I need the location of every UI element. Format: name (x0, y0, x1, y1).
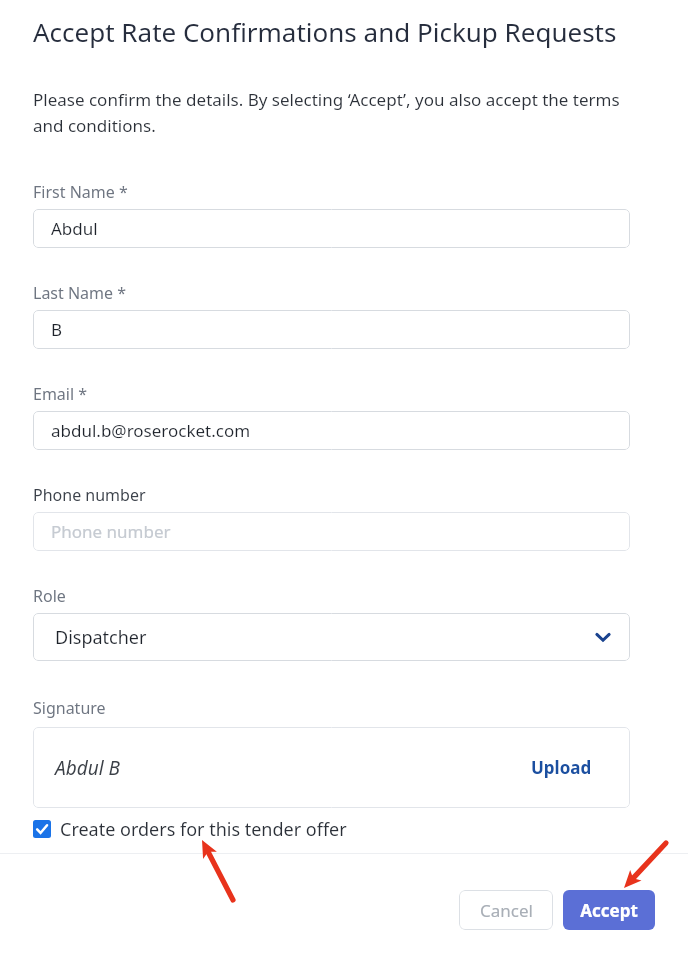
staticText: Signature (33, 697, 106, 719)
staticText: Dispatcher (55, 625, 594, 650)
staticText: Last Name * (33, 282, 127, 304)
staticText: First Name * (33, 181, 128, 203)
staticText: Email * (33, 383, 88, 405)
staticText: Create orders for this tender offer (60, 817, 347, 842)
button[interactable]: abdul.b@roserocket.com (33, 411, 630, 450)
staticText: Please confirm the details. By selecting… (33, 88, 638, 137)
button[interactable]: Accept (563, 890, 655, 930)
button[interactable]: Create orders for this tender offer (31, 814, 349, 844)
staticText: Cancel (480, 899, 533, 922)
button[interactable]: Phone number (33, 512, 630, 551)
staticText: Abdul B (55, 755, 531, 781)
staticText: abdul.b@roserocket.com (51, 419, 251, 442)
button[interactable]: B (33, 310, 630, 349)
staticText: Phone number (33, 484, 146, 506)
staticText: Phone number (51, 520, 171, 543)
button[interactable]: Abdul (33, 209, 630, 248)
button[interactable]: Cancel (459, 890, 553, 930)
button[interactable]: Upload (531, 756, 592, 779)
staticText: B (51, 318, 63, 341)
staticText: Role (33, 585, 66, 607)
button[interactable]: Dispatcher (33, 613, 630, 661)
staticText: Accept (580, 899, 638, 922)
staticText: Upload (531, 756, 592, 779)
staticText: Accept Rate Confirmations and Pickup Req… (33, 14, 617, 49)
staticText: Abdul (51, 217, 98, 240)
